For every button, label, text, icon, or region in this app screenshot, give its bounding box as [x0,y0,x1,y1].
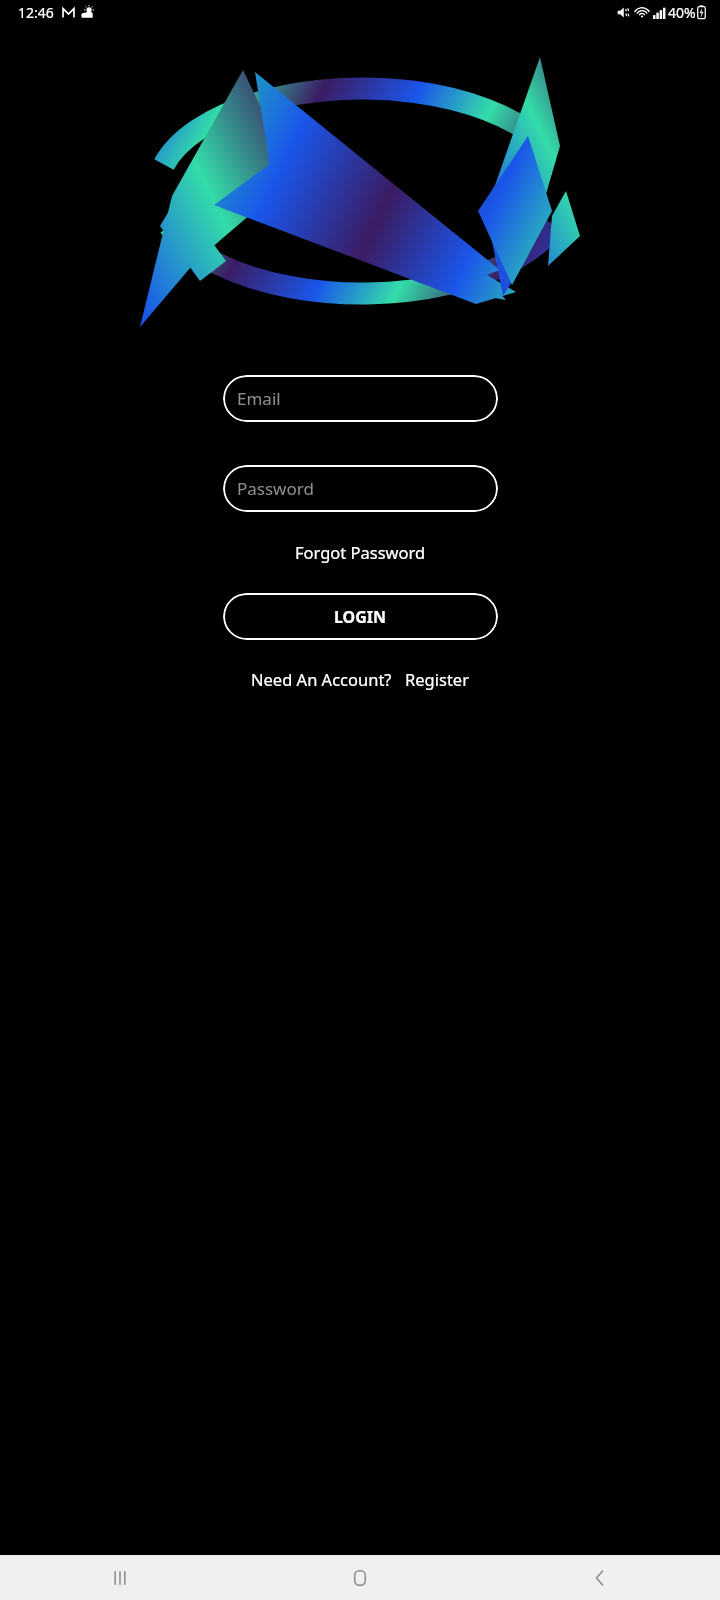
button[interactable]: Recent apps [0,1555,240,1600]
staticText: Register [405,668,469,690]
button[interactable]: Register [405,666,469,692]
staticText: 12:46 [18,3,54,22]
staticText: Email [237,387,281,410]
staticText: Password [237,477,314,500]
staticText: 40% [668,3,696,22]
staticText: Forgot Password [295,541,426,563]
button[interactable]: Back [480,1555,720,1600]
button[interactable]: Email [223,375,498,422]
staticText: Need An Account? [251,668,392,690]
button[interactable]: Forgot Password [289,539,432,565]
button[interactable]: Home [240,1555,480,1600]
button[interactable]: Password [223,465,498,512]
staticText: LOGIN [334,606,387,628]
button[interactable]: LOGIN [223,593,498,640]
button[interactable]: Need An Account? [251,666,392,692]
